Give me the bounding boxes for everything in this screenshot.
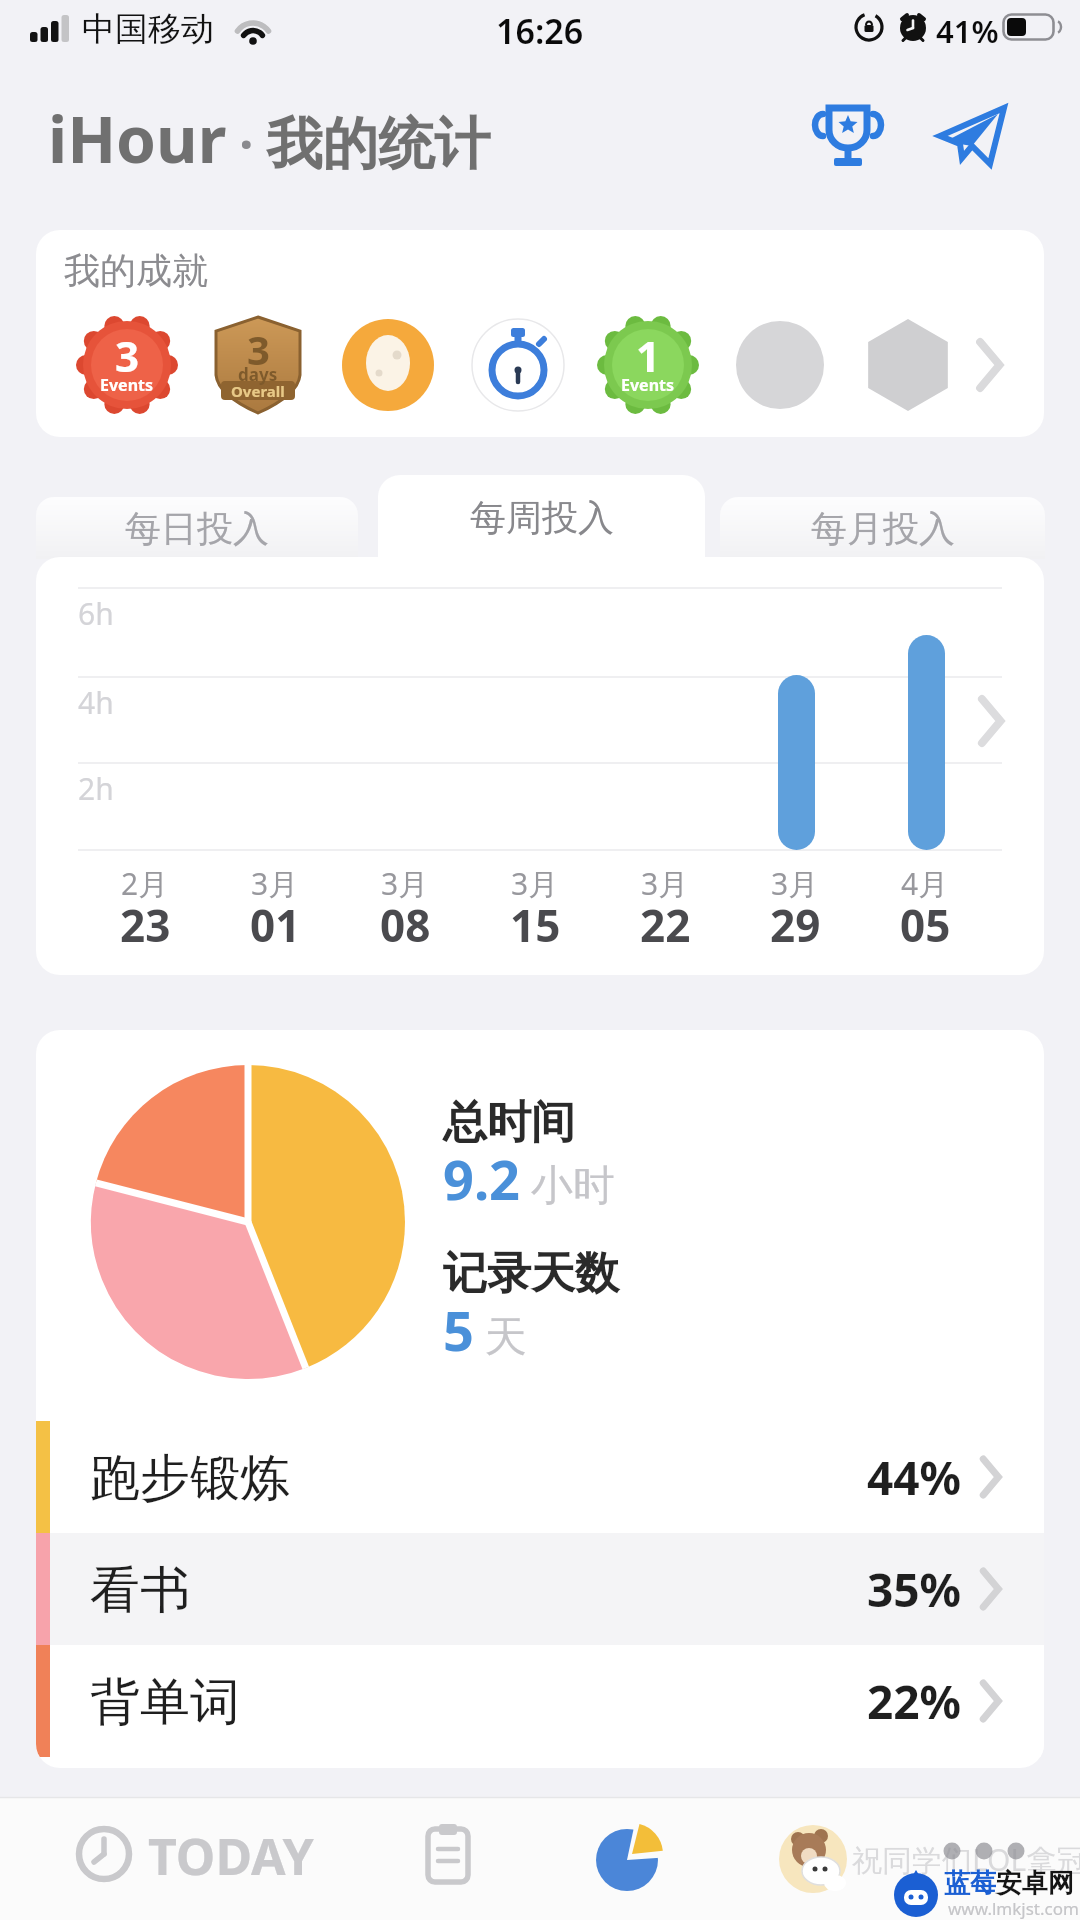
staticText: 1 (636, 327, 661, 384)
button[interactable]: TODAY (60, 1812, 340, 1902)
staticText: 3月 (771, 863, 819, 903)
staticText: 08 (380, 895, 431, 949)
staticText: 15 (510, 895, 561, 949)
staticText: 祝同学们LOL拿冠军 (852, 1839, 1080, 1880)
staticText: Overall (231, 381, 285, 401)
staticText: 05 (900, 895, 951, 949)
button[interactable]: 每月投入 (720, 497, 1045, 559)
staticText: 3月 (641, 863, 689, 903)
staticText: 9.2 小时 (443, 1142, 615, 1216)
staticText: 16:26 (496, 8, 584, 54)
staticText: 22% (867, 1670, 962, 1733)
button[interactable]: 背单词 (36, 1645, 1044, 1757)
staticText: 跑步锻炼 (90, 1447, 290, 1510)
staticText: 23 (120, 895, 171, 949)
staticText: 44% (867, 1446, 962, 1509)
staticText: 每月投入 (811, 506, 955, 551)
button[interactable] (582, 1812, 678, 1902)
staticText: 01 (250, 895, 301, 949)
staticText: days (238, 363, 278, 386)
staticText: Events (100, 374, 154, 396)
staticText: 35% (867, 1558, 962, 1621)
staticText: 6h (78, 593, 114, 634)
staticText: 看书 (90, 1559, 190, 1622)
staticText: 3 (115, 327, 140, 384)
staticText: TODAY (148, 1822, 314, 1890)
button[interactable] (812, 100, 884, 172)
staticText: 总时间 (443, 1095, 575, 1150)
staticText: 3月 (381, 863, 429, 903)
staticText: 蓝莓安卓网 (944, 1867, 1074, 1900)
staticText: www.lmkjst.com (948, 1897, 1079, 1920)
button[interactable]: 看书 (36, 1533, 1044, 1645)
button[interactable]: 每日投入 (36, 497, 358, 559)
button[interactable]: 跑步锻炼 (36, 1421, 1044, 1533)
staticText: 每周投入 (470, 495, 614, 540)
staticText: 4h (78, 682, 114, 723)
button[interactable]: 每周投入 (378, 475, 705, 559)
staticText: 4月 (901, 863, 949, 903)
staticText: 2月 (121, 863, 169, 903)
staticText: 记录天数 (443, 1246, 619, 1301)
staticText: 3 (247, 322, 270, 376)
staticText: 每日投入 (125, 506, 269, 551)
button[interactable]: 我的成就 (36, 230, 1044, 437)
staticText: Events (621, 374, 675, 396)
staticText: 3月 (511, 863, 559, 903)
staticText: 中国移动 (82, 8, 214, 50)
staticText: 41% (936, 10, 999, 52)
staticText: 背单词 (90, 1671, 240, 1734)
staticText: 2h (78, 768, 114, 809)
button[interactable] (938, 102, 1012, 174)
staticText: 3月 (251, 863, 299, 903)
button[interactable] (764, 1812, 860, 1902)
staticText: 5 天 (443, 1293, 527, 1367)
button[interactable] (400, 1812, 496, 1902)
staticText: 29 (770, 895, 821, 949)
staticText: 我的成就 (64, 248, 208, 293)
staticText: 22 (640, 895, 691, 949)
staticText: iHour · 我的统计 (48, 95, 491, 182)
